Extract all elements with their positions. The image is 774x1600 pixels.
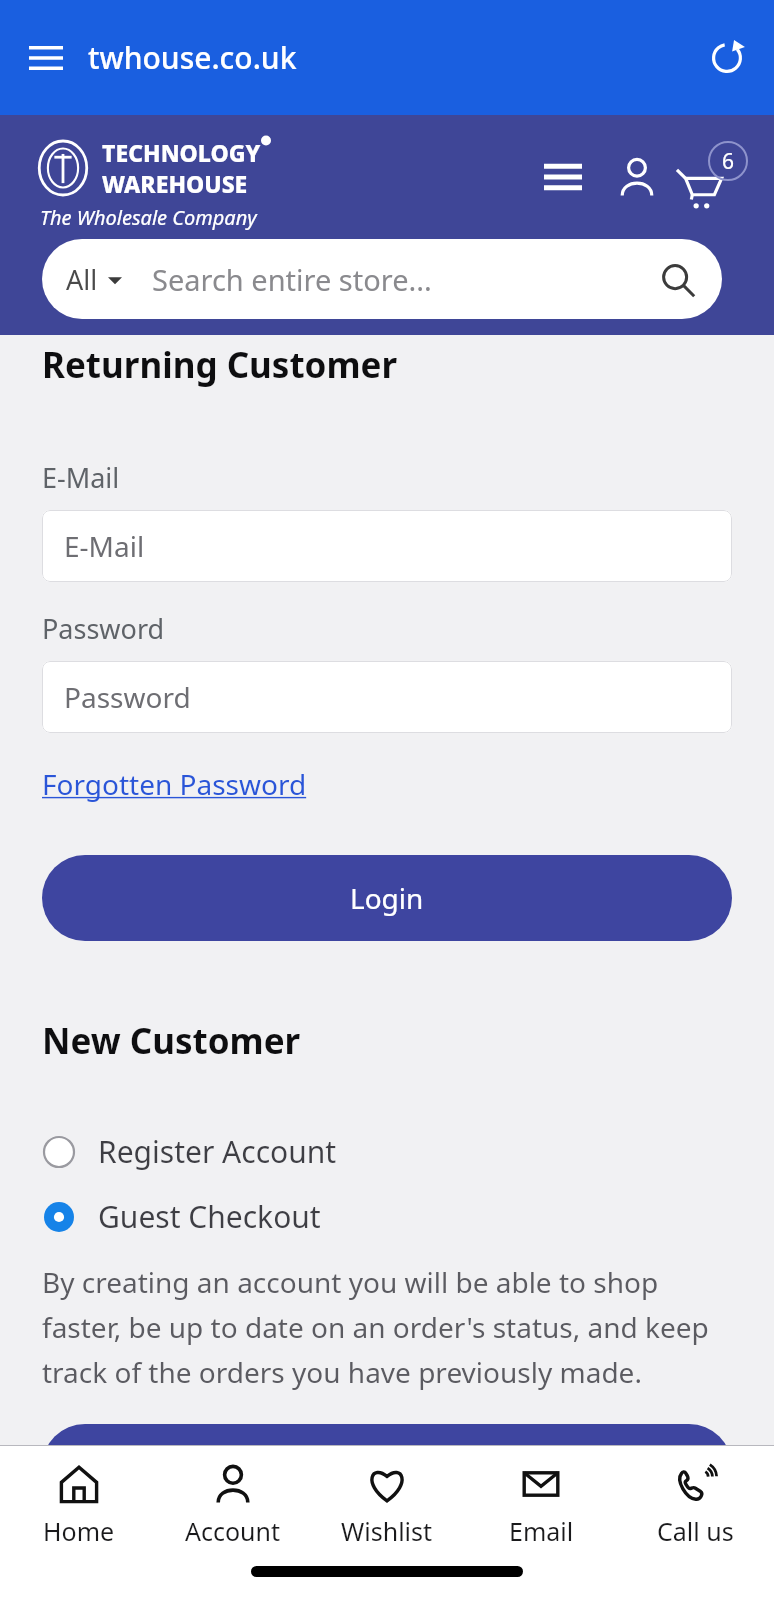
staticText: WAREHOUSE xyxy=(102,168,248,199)
button[interactable]: Browser menu xyxy=(16,28,76,88)
button[interactable]: Home xyxy=(4,1446,154,1566)
staticText: 6 xyxy=(722,147,735,176)
staticText: Forgotten Password xyxy=(42,765,307,803)
staticText: Password xyxy=(42,610,165,647)
staticText: New Customer xyxy=(42,1017,301,1065)
button[interactable]: Login xyxy=(42,855,732,941)
button[interactable]: Password xyxy=(42,661,732,733)
button[interactable]: E-Mail xyxy=(42,510,732,582)
staticText: twhouse.co.uk xyxy=(88,37,297,78)
staticText: Account xyxy=(185,1514,281,1548)
button[interactable]: Register Account xyxy=(0,1123,774,1180)
staticText: Home xyxy=(43,1514,115,1548)
staticText: TECHNOLOGY xyxy=(102,137,261,168)
button[interactable]: Reload xyxy=(698,29,756,87)
staticText: The Wholesale Company xyxy=(40,204,257,231)
staticText: Returning Customer xyxy=(42,341,398,389)
button[interactable]: Call us xyxy=(620,1446,770,1566)
staticText: All xyxy=(66,261,98,298)
staticText: Register Account xyxy=(98,1131,337,1172)
staticText: Search entire store... xyxy=(152,260,660,299)
staticText: Call us xyxy=(657,1514,734,1548)
button[interactable]: Account xyxy=(158,1446,308,1566)
button[interactable]: Site menu xyxy=(534,148,592,206)
staticText: Continue xyxy=(327,1448,447,1486)
button[interactable]: My account xyxy=(608,148,666,206)
staticText: E-Mail xyxy=(64,527,145,565)
button[interactable]: Guest Checkout xyxy=(0,1188,774,1245)
button[interactable]: All xyxy=(42,239,722,319)
staticText: Password xyxy=(64,678,191,716)
staticText: Wishlist xyxy=(341,1514,433,1548)
staticText: Login xyxy=(350,879,424,917)
button[interactable]: Continue xyxy=(42,1424,732,1510)
staticText: Guest Checkout xyxy=(98,1196,321,1237)
button[interactable]: Email xyxy=(466,1446,616,1566)
staticText: E-Mail xyxy=(42,459,120,496)
staticText: By creating an account you will be able … xyxy=(42,1263,724,1392)
staticText: Email xyxy=(509,1514,574,1548)
button[interactable]: Forgotten Password xyxy=(42,765,307,803)
button[interactable]: Shopping cart, 6 items xyxy=(676,141,748,213)
button[interactable]: Wishlist xyxy=(312,1446,462,1566)
